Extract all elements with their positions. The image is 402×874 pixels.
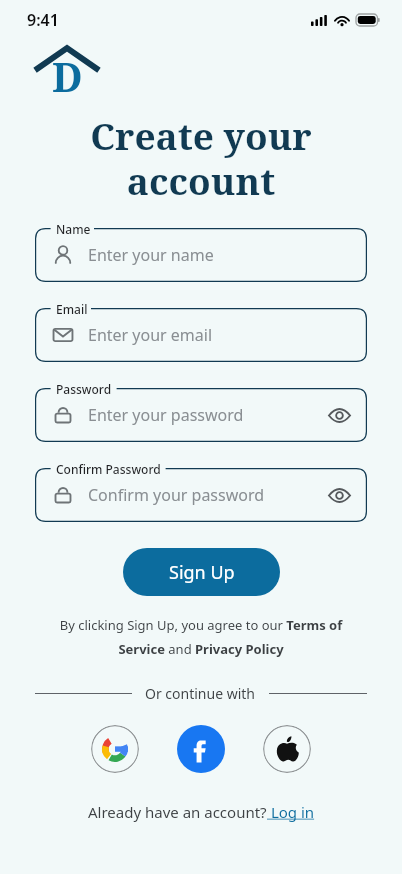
staticText: Already have an account? <box>88 802 267 822</box>
staticText: Name <box>56 221 91 237</box>
staticText: Enter your name <box>88 244 214 266</box>
staticText: Log in <box>267 802 315 822</box>
button[interactable]: Log in <box>267 802 315 822</box>
button[interactable]: Confirm your password <box>35 468 367 522</box>
staticText: By clicking Sign Up, you agree to our Te… <box>38 616 364 658</box>
button[interactable]: Toggle password visibility <box>326 482 352 508</box>
staticText: Confirm Password <box>56 461 161 477</box>
button[interactable]: Enter your email <box>35 308 367 362</box>
staticText: Confirm your password <box>88 484 265 506</box>
staticText: Email <box>56 301 88 317</box>
button[interactable]: Sign up with Google <box>91 725 139 773</box>
staticText: Enter your email <box>88 324 213 346</box>
button[interactable]: Enter your password <box>35 388 367 442</box>
staticText: D <box>52 49 83 103</box>
button[interactable]: Sign up with Facebook <box>177 725 225 773</box>
staticText: Or continue with <box>145 684 256 703</box>
button[interactable]: Sign Up <box>123 548 280 596</box>
button[interactable]: Enter your name <box>35 228 367 282</box>
button[interactable]: Sign up with Apple <box>263 725 311 773</box>
staticText: Enter your password <box>88 404 244 426</box>
staticText: Sign Up <box>169 560 235 585</box>
staticText: 9:41 <box>27 9 59 31</box>
staticText: Create your account <box>22 110 380 206</box>
staticText: Password <box>56 381 112 397</box>
button[interactable]: Toggle password visibility <box>326 402 352 428</box>
